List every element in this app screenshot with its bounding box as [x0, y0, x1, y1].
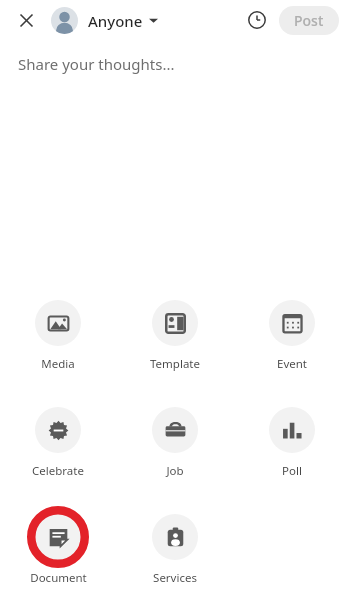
staticText: Share your thoughts...	[18, 54, 175, 74]
staticText: Job	[166, 463, 184, 479]
button[interactable]: Post	[279, 6, 339, 35]
staticText: Document	[30, 570, 87, 586]
button[interactable]: Celebrate	[18, 395, 98, 482]
button[interactable]: Document	[18, 502, 98, 589]
staticText: Anyone	[88, 11, 143, 31]
staticText: Post	[294, 11, 324, 30]
staticText: Media	[41, 356, 75, 372]
staticText: Poll	[282, 463, 302, 479]
button[interactable]: Services	[135, 502, 215, 589]
button[interactable]: Poll	[252, 395, 332, 482]
button[interactable]: Anyone	[49, 5, 160, 36]
button[interactable]: Job	[135, 395, 215, 482]
staticText: Celebrate	[32, 463, 84, 479]
button[interactable]: Event	[252, 288, 332, 375]
button[interactable]: Close	[11, 5, 41, 35]
staticText: Template	[150, 356, 200, 372]
staticText: Services	[153, 570, 197, 586]
staticText: Event	[277, 356, 307, 372]
button[interactable]: Media	[18, 288, 98, 375]
button[interactable]: Template	[135, 288, 215, 375]
button[interactable]: Schedule post	[242, 5, 272, 35]
